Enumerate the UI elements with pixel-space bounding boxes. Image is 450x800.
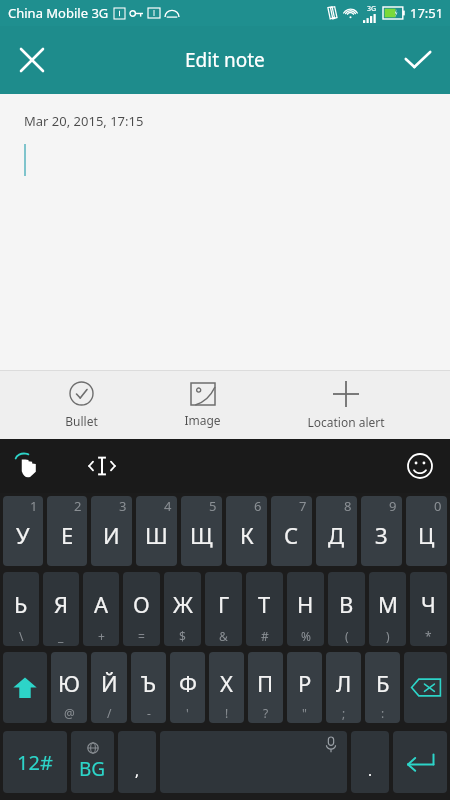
staticText: 7 xyxy=(299,497,307,515)
button[interactable]: 5 xyxy=(181,496,222,566)
staticText: % xyxy=(301,628,311,644)
staticText: \ xyxy=(19,628,24,644)
staticText: Ю xyxy=(58,668,80,698)
staticText: 5 xyxy=(209,497,217,515)
button[interactable]: Я xyxy=(43,572,79,646)
button[interactable]: Ю xyxy=(51,652,87,723)
button[interactable]: Ж xyxy=(164,572,201,646)
staticText: Location alert xyxy=(307,414,385,430)
staticText: + xyxy=(98,628,105,644)
button[interactable]: 8 xyxy=(316,496,357,566)
staticText: М xyxy=(378,589,398,619)
staticText: Н xyxy=(297,589,314,619)
button[interactable]: Р xyxy=(287,652,322,723)
staticText: 4 xyxy=(164,497,172,515)
staticText: Image xyxy=(184,412,221,428)
button[interactable]: Move cursor xyxy=(80,444,124,488)
button[interactable]: 4 xyxy=(136,496,177,566)
staticText: Б xyxy=(376,668,390,698)
staticText: China Mobile 3G xyxy=(8,4,109,22)
staticText: 6 xyxy=(254,497,262,515)
staticText: & xyxy=(219,628,228,644)
button[interactable]: Н xyxy=(287,572,324,646)
button[interactable]: В xyxy=(328,572,365,646)
staticText: 12# xyxy=(17,749,53,776)
staticText: З xyxy=(375,520,388,550)
button[interactable]: Ъ xyxy=(131,652,166,723)
button[interactable]: Г xyxy=(205,572,242,646)
staticText: Й xyxy=(101,668,118,698)
button[interactable]: 1 xyxy=(3,496,43,566)
staticText: - xyxy=(147,705,151,721)
staticText: О xyxy=(133,589,150,619)
staticText: Е xyxy=(61,520,74,550)
staticText: Ь xyxy=(14,589,28,619)
button[interactable]: Ф xyxy=(170,652,205,723)
staticText: А xyxy=(94,589,109,619)
staticText: 9 xyxy=(389,497,397,515)
staticText: ) xyxy=(386,628,390,644)
staticText: Ф xyxy=(179,668,197,698)
staticText: Edit note xyxy=(185,47,265,73)
staticText: Д xyxy=(328,520,345,550)
staticText: ! xyxy=(225,705,229,721)
button[interactable]: , xyxy=(118,731,156,793)
button[interactable]: Emoji xyxy=(398,444,442,488)
staticText: 0 xyxy=(434,497,442,515)
staticText: Ж xyxy=(173,589,193,619)
staticText: Ч xyxy=(421,589,436,619)
button[interactable]: Image xyxy=(178,379,227,432)
button[interactable]: Space xyxy=(160,731,347,793)
button[interactable]: Т xyxy=(246,572,283,646)
staticText: _ xyxy=(58,628,64,644)
staticText: Я xyxy=(54,589,69,619)
button[interactable]: Й xyxy=(91,652,127,723)
button[interactable]: 0 xyxy=(406,496,447,566)
staticText: @ xyxy=(64,705,75,721)
button[interactable]: Backspace xyxy=(404,652,447,723)
button[interactable]: 6 xyxy=(226,496,267,566)
button[interactable]: М xyxy=(369,572,406,646)
button[interactable]: Save xyxy=(392,34,444,86)
button[interactable]: 2 xyxy=(47,496,87,566)
button[interactable]: Gesture typing xyxy=(6,444,50,488)
button[interactable]: А xyxy=(83,572,119,646)
button[interactable]: 7 xyxy=(271,496,312,566)
button[interactable]: Close xyxy=(6,34,58,86)
button[interactable]: BG xyxy=(71,731,114,793)
button[interactable]: Enter xyxy=(393,731,447,793)
button[interactable]: Ь xyxy=(3,572,39,646)
button[interactable]: . xyxy=(351,731,389,793)
staticText: Ъ xyxy=(141,668,157,698)
button[interactable]: Bullet xyxy=(59,377,104,433)
button[interactable]: Ч xyxy=(410,572,447,646)
staticText: 8 xyxy=(344,497,352,515)
staticText: # xyxy=(261,628,269,644)
staticText: ' xyxy=(186,705,189,721)
staticText: ( xyxy=(345,628,349,644)
staticText: Щ xyxy=(190,520,213,550)
button[interactable]: Х xyxy=(209,652,244,723)
button[interactable]: Location alert xyxy=(301,377,391,434)
button[interactable]: Б xyxy=(365,652,400,723)
staticText: 2 xyxy=(74,497,82,515)
staticText: Mar 20, 2015, 17:15 xyxy=(24,112,144,130)
staticText: Т xyxy=(258,589,271,619)
button[interactable]: Л xyxy=(326,652,361,723)
staticText: ; xyxy=(342,705,346,721)
button[interactable]: 9 xyxy=(361,496,402,566)
staticText: BG xyxy=(79,756,106,782)
staticText: К xyxy=(240,520,254,550)
button[interactable]: 12# xyxy=(3,731,67,793)
staticText: = xyxy=(138,628,145,644)
button[interactable]: 3 xyxy=(91,496,132,566)
staticText: Ц xyxy=(418,520,435,550)
button[interactable]: П xyxy=(248,652,283,723)
button[interactable]: О xyxy=(123,572,160,646)
button[interactable]: Shift xyxy=(3,652,47,723)
staticText: * xyxy=(425,628,432,644)
staticText: Х xyxy=(220,668,233,698)
staticText: 3G xyxy=(367,4,377,14)
staticText: , xyxy=(135,760,140,780)
staticText: Г xyxy=(218,589,230,619)
